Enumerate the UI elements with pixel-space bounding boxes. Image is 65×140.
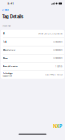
- staticText: Memory Information: [3, 66, 18, 67]
- staticText: UID: [3, 33, 5, 35]
- staticText: N: [53, 123, 56, 129]
- staticText: Back: [4, 8, 8, 11]
- staticText: Unknown: [53, 57, 62, 60]
- staticText: Tag Details: [2, 14, 23, 19]
- staticText: P: [59, 123, 62, 129]
- staticText: supported: [3, 75, 12, 77]
- button[interactable]: ‹: [0, 7, 8, 13]
- staticText: Technologies: [3, 73, 13, 74]
- staticText: 1 Bytes: [55, 65, 62, 68]
- staticText: IC Name: [3, 57, 8, 59]
- staticText: X: [56, 123, 59, 129]
- staticText: Unknown: [53, 41, 62, 43]
- staticText: 04:8F:2A:12:C5:63:80:90: [38, 32, 62, 35]
- staticText: Unknown: [53, 49, 62, 51]
- staticText: ISO14443 / NfcA: [45, 73, 62, 76]
- staticText: Family: [3, 41, 7, 43]
- staticText: TAG DETAILS: [2, 25, 11, 27]
- staticText: IC Manufacturer: [3, 49, 16, 51]
- staticText: ‹: [2, 7, 4, 12]
- staticText: 9:41: [7, 2, 13, 5]
